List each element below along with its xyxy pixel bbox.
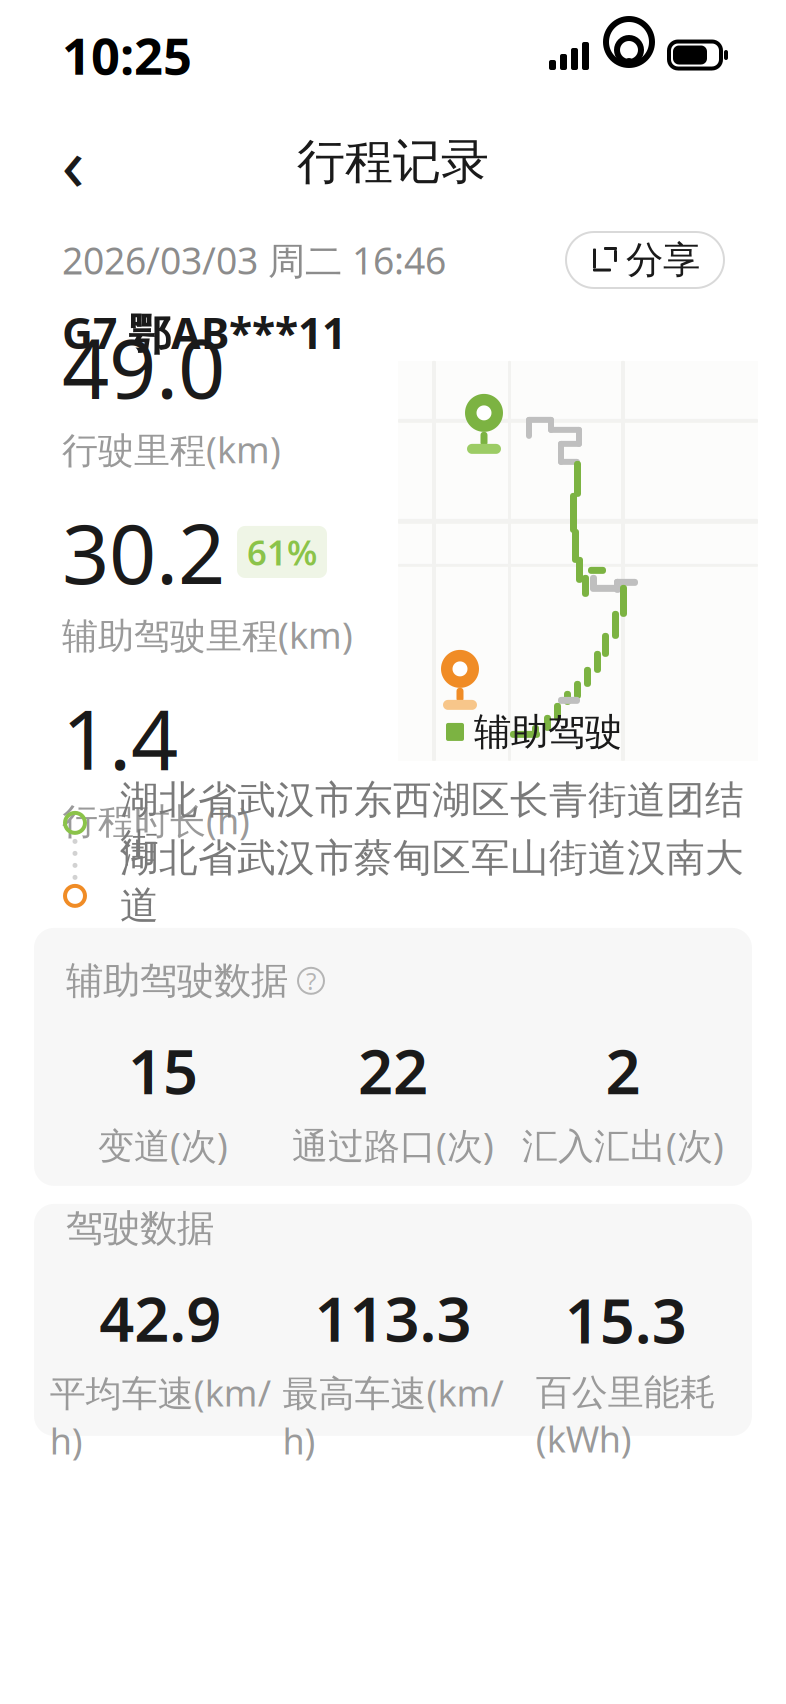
staticText: 2026/03/03 周二 16:46 (62, 235, 446, 285)
staticText: 30.2 (62, 497, 225, 607)
staticText: 百公里能耗(kWh) (536, 1370, 716, 1462)
staticText: 行驶里程(km) (62, 425, 281, 473)
staticText: 61% (247, 529, 317, 575)
staticText: 49.0 (62, 311, 225, 421)
staticText: ‹ (61, 112, 84, 212)
staticText: 辅助驾驶数据 (66, 958, 288, 1004)
staticText: 湖北省武汉市东西湖区长青街道团结街 (120, 776, 744, 871)
button[interactable]: Back (38, 127, 108, 197)
staticText: 113.3 (314, 1277, 471, 1359)
staticText: 驾驶数据 (66, 1205, 214, 1251)
staticText: 平均车速(km/h) (50, 1369, 271, 1464)
button[interactable]: 辅助驾驶数据说明 (296, 966, 326, 996)
staticText: 湖北省武汉市蔡甸区军山街道汉南大道 (120, 834, 744, 929)
staticText: G7 鄂AB***11 (62, 304, 346, 361)
staticText: 行程时长(h) (62, 796, 250, 844)
staticText: 通过路口(次) (292, 1121, 494, 1169)
staticText: 22 (358, 1030, 428, 1111)
staticText: ? (306, 965, 316, 997)
staticText: 15 (128, 1030, 198, 1111)
staticText: 42.9 (99, 1277, 221, 1359)
staticText: 1.4 (62, 683, 178, 792)
staticText: 变道(次) (98, 1121, 228, 1169)
staticText: 10:25 (62, 21, 192, 89)
staticText: 辅助驾驶 (474, 709, 622, 755)
staticText: 行程记录 (297, 132, 489, 191)
button[interactable]: 分享 (566, 232, 724, 288)
staticText: 2 (605, 1030, 640, 1111)
staticText: 辅助驾驶里程(km) (62, 611, 353, 659)
staticText: 分享 (626, 237, 700, 283)
staticText: 汇入汇出(次) (522, 1121, 724, 1169)
staticText: 最高车速(km/h) (282, 1369, 503, 1464)
staticText: 15.3 (565, 1279, 687, 1360)
